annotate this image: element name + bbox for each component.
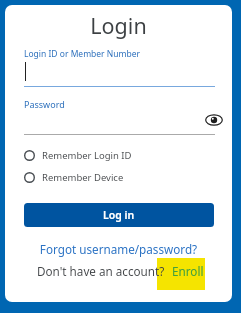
staticText: Remember Device xyxy=(42,171,124,183)
staticText: Password xyxy=(24,98,65,110)
staticText: Login ID or Member Number xyxy=(24,48,141,60)
staticText: Remember Login ID xyxy=(42,149,132,161)
staticText: Don't have an account? xyxy=(37,263,168,279)
button[interactable]: Enroll xyxy=(172,263,204,279)
button[interactable]: Forgot username/password? xyxy=(5,241,232,257)
button[interactable] xyxy=(205,113,223,127)
button[interactable]: Remember Device xyxy=(24,171,124,183)
button[interactable]: Remember Login ID xyxy=(24,149,132,161)
button[interactable]: Log in xyxy=(24,203,214,227)
staticText: Login xyxy=(5,11,232,40)
staticText: Log in xyxy=(103,208,135,222)
